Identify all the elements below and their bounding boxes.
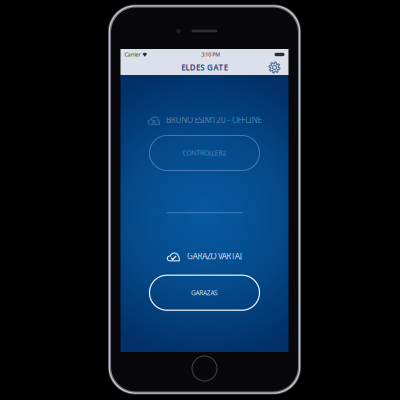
- button[interactable]: CONTROLLER2: [149, 135, 259, 170]
- button[interactable]: Settings: [264, 60, 284, 74]
- staticText: GARAZAS: [191, 288, 218, 297]
- button[interactable]: GARAZAS: [149, 275, 259, 310]
- staticText: GARAZO VARTAI: [187, 251, 242, 261]
- staticText: 3:10 PM: [201, 51, 220, 58]
- staticText: ELDES GATE: [181, 62, 228, 73]
- staticText: BRUNO ESIM120 - OFFLINE: [166, 115, 261, 125]
- staticText: Carrier: [124, 51, 140, 58]
- staticText: CONTROLLER2: [182, 149, 226, 157]
